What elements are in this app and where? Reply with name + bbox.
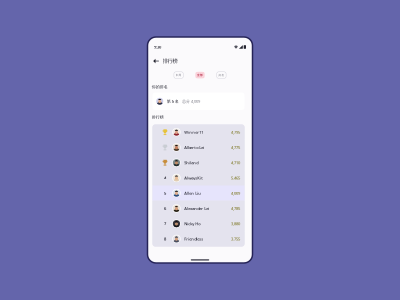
staticText: 8	[164, 236, 166, 241]
staticText: 4,795	[231, 129, 240, 135]
staticText: Winner11	[184, 129, 203, 135]
staticText: Shiland	[184, 160, 198, 165]
staticText: Nicky Ho	[184, 221, 200, 226]
staticText: Allen Liu	[184, 190, 201, 196]
staticText: 3,880	[231, 221, 240, 226]
staticText: 4,775	[231, 145, 240, 150]
button[interactable]: Back	[150, 55, 161, 66]
staticText: 6	[164, 206, 166, 211]
staticText: 5	[164, 190, 166, 196]
staticText: 排行榜	[152, 115, 164, 120]
staticText: 第 5 名	[167, 99, 179, 104]
button[interactable]: Alberto Lei	[152, 140, 244, 155]
button[interactable]: 7	[152, 216, 244, 231]
button[interactable]: 本周	[174, 72, 183, 78]
staticText: 3,755	[231, 236, 240, 241]
button[interactable]: 4	[152, 170, 244, 185]
button[interactable]: 5	[152, 185, 244, 201]
staticText: Alexander Lei	[184, 206, 209, 211]
staticText: 本周	[176, 73, 182, 77]
staticText: 9:30	[154, 44, 161, 50]
button[interactable]: Winner11	[152, 124, 244, 140]
staticText: 你的排名	[152, 84, 168, 89]
staticText: Friendless	[184, 236, 203, 241]
button[interactable]: 8	[152, 231, 244, 246]
staticText: 排行榜	[162, 58, 177, 64]
button[interactable]: Shiland	[152, 155, 244, 170]
staticText: Alberto Lei	[184, 145, 204, 150]
staticText: 7	[164, 221, 166, 226]
staticText: 4,009	[231, 190, 240, 196]
staticText: 5,465	[231, 175, 240, 180]
staticText: 好友	[218, 73, 224, 77]
button[interactable]: 第 5 名	[152, 92, 244, 110]
staticText: AlwaysKit	[184, 175, 203, 180]
staticText: 4	[164, 175, 166, 180]
staticText: 总分 4,009	[182, 99, 200, 104]
button[interactable]: 好友	[217, 72, 226, 78]
staticText: 4,710	[231, 160, 240, 165]
staticText: 4,785	[231, 206, 240, 211]
button[interactable]: 全部	[195, 72, 205, 78]
button[interactable]: 6	[152, 201, 244, 216]
staticText: 全部	[197, 73, 203, 77]
